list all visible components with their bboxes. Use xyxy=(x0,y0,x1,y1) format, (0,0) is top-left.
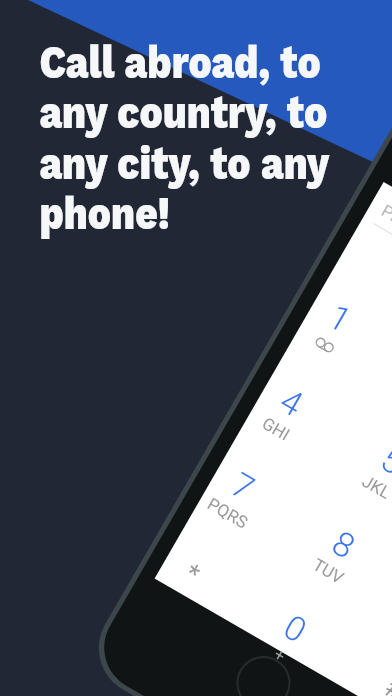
button[interactable] xyxy=(0,0,392,696)
